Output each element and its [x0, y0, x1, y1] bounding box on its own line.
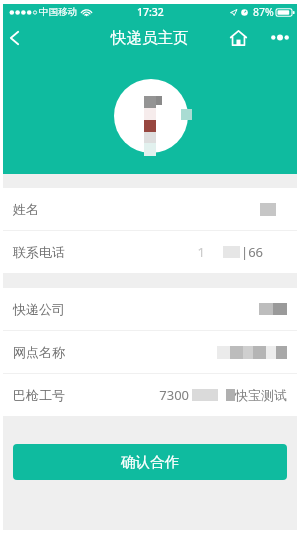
- button[interactable]: 联系电话: [3, 231, 297, 273]
- button[interactable]: 巴枪工号: [3, 374, 297, 416]
- staticText: 网点名称: [13, 344, 65, 360]
- button[interactable]: 姓名: [3, 188, 297, 230]
- button[interactable]: Home: [222, 20, 254, 55]
- staticText: 1: [197, 243, 205, 261]
- button[interactable]: 网点名称: [3, 331, 297, 373]
- staticText: 17:32: [137, 5, 164, 19]
- staticText: 87%: [253, 5, 274, 19]
- staticText: 快递公司: [13, 301, 65, 317]
- staticText: |66: [240, 243, 263, 261]
- staticText: 联系电话: [13, 244, 65, 260]
- button[interactable]: 快递公司: [3, 288, 297, 330]
- button[interactable]: Back: [3, 20, 33, 55]
- button[interactable]: 确认合作: [13, 444, 287, 480]
- button[interactable]: More options: [264, 20, 296, 55]
- staticText: 快递员主页: [111, 28, 189, 48]
- staticText: 巴枪工号: [13, 387, 65, 403]
- staticText: 快宝测试: [235, 387, 287, 403]
- staticText: 姓名: [13, 201, 39, 217]
- staticText: 确认合作: [121, 453, 179, 471]
- staticText: 中国移动: [39, 6, 77, 18]
- staticText: 7300: [159, 386, 189, 404]
